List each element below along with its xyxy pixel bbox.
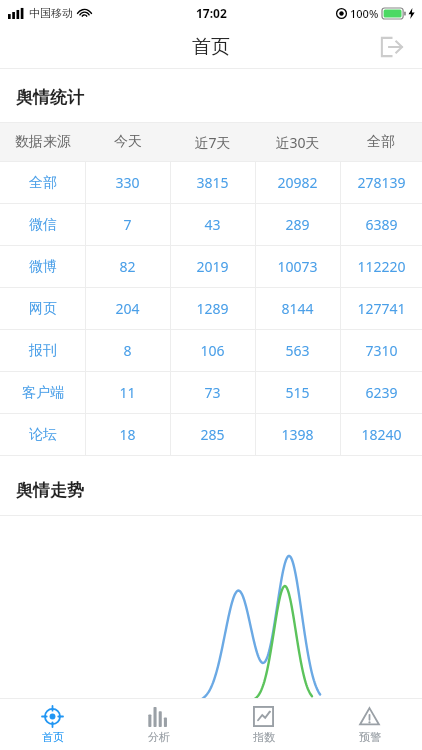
button[interactable]: 退出登录 (372, 28, 410, 66)
staticText: 分析 (148, 730, 170, 744)
staticText: 微信 (29, 216, 57, 234)
staticText: 106 (200, 341, 225, 360)
staticText: 285 (200, 425, 225, 444)
staticText: 73 (204, 383, 221, 402)
staticText: 289 (285, 215, 310, 234)
button[interactable]: 微信 (0, 204, 422, 245)
staticText: 预警 (359, 730, 381, 744)
staticText: 112220 (357, 257, 406, 276)
staticText: 8144 (281, 299, 314, 318)
staticText: 127741 (357, 299, 406, 318)
staticText: 18 (119, 425, 136, 444)
staticText: 43 (204, 215, 221, 234)
staticText: 报刊 (29, 342, 57, 360)
staticText: 2019 (196, 257, 229, 276)
button[interactable]: 预警 (317, 699, 422, 750)
staticText: 近7天 (194, 133, 231, 152)
staticText: 7 (123, 215, 132, 234)
staticText: 指数 (253, 730, 275, 744)
staticText: 1398 (281, 425, 314, 444)
button[interactable]: 报刊 (0, 330, 422, 371)
staticText: 论坛 (29, 426, 57, 444)
button[interactable]: 客户端 (0, 372, 422, 413)
staticText: 近30天 (275, 133, 320, 152)
staticText: 客户端 (22, 384, 64, 402)
staticText: 6239 (365, 383, 398, 402)
staticText: 17:02 (196, 5, 227, 21)
staticText: 20982 (277, 173, 318, 192)
staticText: 563 (285, 341, 310, 360)
staticText: 舆情走势 (16, 480, 84, 501)
staticText: 6389 (365, 215, 398, 234)
button[interactable]: 指数 (211, 699, 316, 750)
staticText: 全部 (29, 174, 57, 192)
button[interactable]: 全部 (0, 162, 422, 203)
staticText: 18240 (361, 425, 402, 444)
staticText: 舆情统计 (16, 87, 84, 108)
staticText: 今天 (114, 133, 142, 151)
button[interactable]: 分析 (106, 699, 211, 750)
staticText: 330 (115, 173, 140, 192)
staticText: 100% (350, 6, 379, 21)
staticText: 首页 (42, 730, 64, 744)
button[interactable]: 网页 (0, 288, 422, 329)
staticText: 278139 (357, 173, 406, 192)
staticText: 8 (123, 341, 132, 360)
staticText: 微博 (29, 258, 57, 276)
staticText: 首页 (192, 35, 230, 59)
staticText: 网页 (29, 300, 57, 318)
staticText: 515 (285, 383, 310, 402)
staticText: 全部 (367, 133, 395, 151)
button[interactable]: 首页 (0, 699, 105, 750)
staticText: 204 (115, 299, 140, 318)
staticText: 82 (119, 257, 136, 276)
button[interactable]: 论坛 (0, 414, 422, 455)
staticText: 10073 (277, 257, 318, 276)
staticText: 数据来源 (15, 133, 71, 151)
staticText: 中国移动 (29, 6, 73, 20)
staticText: 3815 (196, 173, 229, 192)
staticText: 7310 (365, 341, 398, 360)
staticText: 11 (119, 383, 136, 402)
button[interactable]: 微博 (0, 246, 422, 287)
staticText: 1289 (196, 299, 229, 318)
